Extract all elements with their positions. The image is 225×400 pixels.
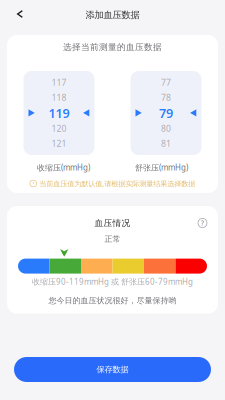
staticText: 选择当前测量的血压数据	[63, 42, 162, 52]
staticText: 120	[51, 123, 66, 134]
staticText: 80	[161, 123, 171, 134]
staticText: 舒张压(mmHg)	[135, 162, 188, 173]
staticText: 118	[51, 92, 66, 103]
button[interactable]: Help	[198, 218, 207, 227]
staticText: 121	[51, 138, 66, 149]
staticText: 当前血压值为默认值,请根据实际测量结果选择数据	[39, 179, 195, 188]
staticText: 81	[161, 138, 171, 149]
staticText: ?	[201, 219, 204, 227]
button[interactable]: 保存数据	[14, 357, 211, 382]
staticText: 收缩压90-119mmHg 或 舒张压60-79mmHg	[32, 276, 193, 287]
staticText: 血压情况	[94, 218, 130, 228]
staticText: 收缩压(mmHg)	[37, 162, 90, 173]
staticText: 您今日的血压状况很好，尽量保持哟	[48, 296, 176, 305]
staticText: 正常	[104, 234, 120, 244]
staticText: 78	[161, 92, 171, 103]
staticText: 79	[159, 105, 173, 121]
staticText: 117	[51, 77, 66, 88]
staticText: 保存数据	[96, 364, 128, 375]
staticText: 119	[48, 105, 69, 121]
staticText: 77	[161, 77, 171, 88]
staticText: 添加血压数据	[85, 9, 139, 21]
button[interactable]: Back	[9, 1, 31, 27]
